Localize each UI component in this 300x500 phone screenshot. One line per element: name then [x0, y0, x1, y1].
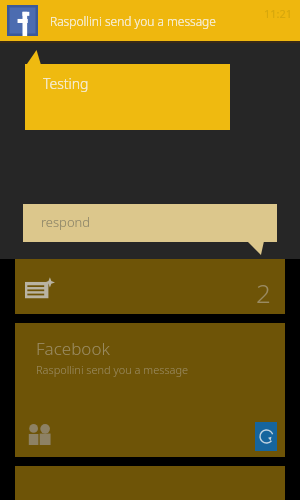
staticText: respond [41, 213, 91, 231]
button[interactable]: messages [15, 240, 285, 314]
button[interactable]: Testing [25, 64, 230, 130]
other: Facebook [7, 5, 38, 36]
button[interactable]: Refresh [255, 422, 277, 451]
staticText: Facebook [36, 337, 110, 360]
staticText: 11:21 [263, 6, 292, 21]
staticText: Testing [43, 74, 89, 93]
staticText: Raspollini send you a message [50, 13, 216, 29]
button[interactable]: Facebook [15, 323, 285, 457]
button[interactable]: respond [23, 204, 277, 242]
staticText: 2 [256, 275, 271, 310]
button[interactable]: Facebook [0, 0, 300, 41]
staticText: Raspollini send you a message [36, 362, 189, 377]
